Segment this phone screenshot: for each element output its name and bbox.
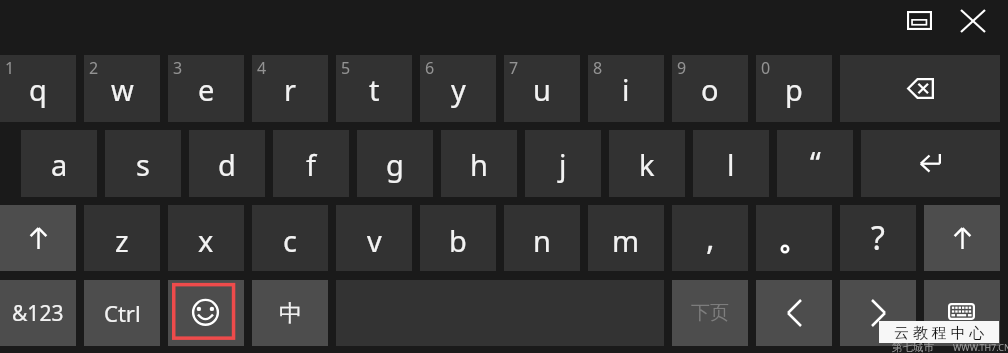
staticText: j xyxy=(559,145,567,184)
staticText: 8 xyxy=(593,57,603,79)
staticText: p xyxy=(785,70,803,109)
staticText: 7 xyxy=(509,57,519,79)
staticText: m xyxy=(612,221,640,260)
button[interactable]: z xyxy=(84,205,160,271)
button[interactable]: Dock keyboard xyxy=(899,5,939,35)
staticText: o xyxy=(701,70,719,109)
button[interactable]: Next page xyxy=(672,280,748,346)
button[interactable]: j xyxy=(525,130,601,197)
staticText: 4 xyxy=(257,57,267,79)
button[interactable]: w xyxy=(84,55,160,122)
staticText: 2 xyxy=(89,57,99,79)
button[interactable]: Backspace xyxy=(840,55,1000,122)
button[interactable]: Emoji xyxy=(168,280,244,346)
staticText: x xyxy=(198,221,214,260)
staticText: n xyxy=(533,221,551,260)
staticText: , xyxy=(706,216,715,260)
staticText: y xyxy=(451,70,466,109)
staticText: s xyxy=(136,145,150,184)
button[interactable]: f xyxy=(273,130,349,197)
staticText: 云 教 程 中 心 xyxy=(894,322,985,342)
button[interactable]: q xyxy=(0,55,76,122)
button[interactable]: y xyxy=(420,55,496,122)
button[interactable]: x xyxy=(168,205,244,271)
staticText: &123 xyxy=(12,299,64,328)
staticText: Ctrl xyxy=(104,298,141,328)
button[interactable]: e xyxy=(168,55,244,122)
button[interactable]: Question mark xyxy=(840,205,916,271)
staticText: d xyxy=(218,145,236,184)
button[interactable]: l xyxy=(693,130,769,197)
staticText: e xyxy=(198,70,215,109)
staticText: WWW.TH7.CN xyxy=(953,341,1008,353)
button[interactable]: m xyxy=(588,205,664,271)
button[interactable]: u xyxy=(504,55,580,122)
button[interactable]: Chinese xyxy=(252,280,328,346)
staticText: l xyxy=(727,145,735,184)
staticText: h xyxy=(470,145,488,184)
staticText: z xyxy=(115,221,129,260)
staticText: 下页 xyxy=(691,301,729,325)
staticText: w xyxy=(111,70,134,109)
button[interactable]: Shift xyxy=(924,205,1000,271)
button[interactable]: Close xyxy=(955,6,991,36)
button[interactable]: o xyxy=(672,55,748,122)
button[interactable]: Symbols xyxy=(0,280,76,346)
button[interactable]: i xyxy=(588,55,664,122)
staticText: 中 xyxy=(279,299,302,328)
button[interactable]: Ctrl xyxy=(84,280,160,346)
button[interactable]: Enter xyxy=(861,130,1000,197)
button[interactable]: h xyxy=(441,130,517,197)
button[interactable]: v xyxy=(336,205,412,271)
button[interactable]: t xyxy=(336,55,412,122)
button[interactable]: Next xyxy=(840,280,916,346)
staticText: v xyxy=(367,221,382,260)
staticText: u xyxy=(533,70,551,109)
staticText: q xyxy=(29,70,47,109)
button[interactable]: d xyxy=(189,130,265,197)
button[interactable]: Period xyxy=(756,205,832,271)
staticText: 9 xyxy=(677,57,687,79)
staticText: i xyxy=(622,70,630,109)
staticText: r xyxy=(284,70,296,109)
staticText: ? xyxy=(871,216,885,260)
button[interactable]: n xyxy=(504,205,580,271)
button[interactable]: Quote xyxy=(777,130,853,197)
staticText: t xyxy=(369,70,380,109)
button[interactable]: Previous xyxy=(756,280,832,346)
button[interactable]: a xyxy=(21,130,97,197)
button[interactable]: Keyboard layout xyxy=(924,280,1000,346)
staticText: c xyxy=(283,221,297,260)
button[interactable]: c xyxy=(252,205,328,271)
staticText: 6 xyxy=(425,57,435,79)
staticText: g xyxy=(386,145,404,184)
button[interactable]: p xyxy=(756,55,832,122)
button[interactable]: g xyxy=(357,130,433,197)
button[interactable]: r xyxy=(252,55,328,122)
button[interactable]: s xyxy=(105,130,181,197)
staticText: 5 xyxy=(341,57,351,79)
button[interactable]: Shift xyxy=(0,205,76,271)
staticText: 3 xyxy=(173,57,183,79)
button[interactable]: Comma xyxy=(672,205,748,271)
staticText: a xyxy=(51,145,68,184)
button[interactable]: b xyxy=(420,205,496,271)
staticText: k xyxy=(639,145,655,184)
staticText: f xyxy=(306,145,316,184)
staticText: “ xyxy=(810,142,821,183)
staticText: b xyxy=(449,221,467,260)
staticText: 0 xyxy=(761,57,771,79)
staticText: 第七城市 xyxy=(892,341,934,353)
staticText: 1 xyxy=(5,57,15,79)
button[interactable]: k xyxy=(609,130,685,197)
